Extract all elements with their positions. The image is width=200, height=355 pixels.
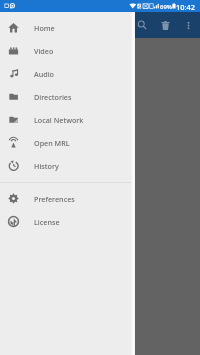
staticText: Home (34, 23, 55, 33)
staticText: Preferences (34, 194, 75, 204)
button[interactable]: Search (130, 12, 154, 38)
staticText: Video (34, 46, 54, 56)
staticText: License (34, 217, 60, 227)
button[interactable]: Open MRL (0, 131, 135, 154)
staticText: Audio (34, 69, 55, 79)
staticText: 69% (160, 3, 172, 11)
staticText: Directories (34, 92, 72, 102)
staticText: Local Network (34, 115, 84, 125)
staticText: History (34, 161, 59, 171)
button[interactable]: Delete (154, 12, 177, 38)
button[interactable]: Preferences (0, 187, 135, 210)
button[interactable]: Directories (0, 85, 135, 108)
staticText: 10:42 (176, 2, 195, 12)
button[interactable]: Home (0, 16, 135, 39)
button[interactable]: License (0, 210, 135, 233)
button[interactable]: Audio (0, 62, 135, 85)
staticText: Open MRL (34, 138, 70, 148)
button[interactable]: History (0, 154, 135, 177)
button[interactable]: Local Network (0, 108, 135, 131)
button[interactable]: More options (177, 12, 199, 38)
button[interactable]: Video (0, 39, 135, 62)
